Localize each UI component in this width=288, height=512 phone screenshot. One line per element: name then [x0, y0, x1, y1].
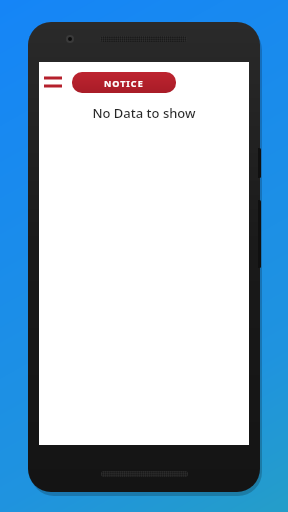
- staticText: No Data to show: [92, 104, 196, 122]
- button[interactable]: NOTICE: [72, 72, 176, 93]
- button[interactable]: Open navigation menu: [42, 71, 64, 93]
- staticText: NOTICE: [104, 77, 144, 89]
